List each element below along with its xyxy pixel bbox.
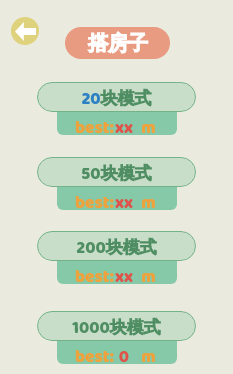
staticText: 1000块模式 [72, 315, 161, 341]
button[interactable]: 搭房子 [65, 27, 170, 59]
staticText: best: [75, 264, 114, 284]
staticText: best: [75, 190, 114, 210]
staticText: 200块模式 [76, 235, 157, 261]
button[interactable]: 20块模式 [37, 82, 196, 112]
staticText: 50块模式 [81, 161, 152, 187]
staticText: m [141, 264, 156, 284]
button[interactable]: Back [11, 17, 39, 45]
staticText: xx [111, 115, 137, 135]
staticText: m [141, 344, 156, 364]
staticText: m [141, 115, 156, 135]
button[interactable]: 1000块模式 [37, 311, 196, 341]
button[interactable]: 200块模式 [37, 231, 196, 261]
staticText: best: [75, 115, 114, 135]
staticText: m [141, 190, 156, 210]
staticText: 搭房子 [88, 31, 148, 56]
staticText: best: [75, 344, 114, 364]
staticText: 0 [111, 344, 137, 364]
staticText: 20块模式 [81, 86, 152, 112]
staticText: xx [111, 264, 137, 284]
button[interactable]: 50块模式 [37, 157, 196, 187]
staticText: xx [111, 190, 137, 210]
